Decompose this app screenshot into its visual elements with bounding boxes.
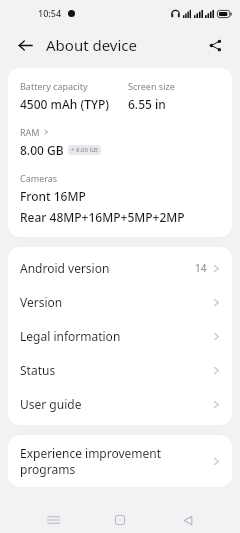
staticText: Experience improvement programs [20, 445, 162, 477]
staticText: Screen size [128, 80, 175, 92]
staticText: 10:54 [38, 7, 62, 19]
button[interactable]: User guide [8, 387, 232, 421]
button[interactable]: Back [12, 32, 38, 58]
button[interactable]: Recent apps [38, 507, 68, 533]
button[interactable]: Legal information [8, 319, 232, 353]
staticText: + 8.00 GB [71, 146, 98, 154]
button[interactable]: Home [105, 507, 135, 533]
staticText: About device [46, 35, 138, 55]
staticText: Version [20, 294, 63, 310]
button[interactable]: RAM [20, 126, 49, 138]
button[interactable]: Status [8, 353, 232, 387]
staticText: Battery capacity [20, 80, 88, 92]
staticText: Cameras [20, 172, 58, 184]
button[interactable]: Experience improvement programs [8, 435, 232, 487]
staticText: RAM [20, 126, 40, 138]
button[interactable]: Share [202, 32, 228, 58]
button[interactable]: Version [8, 285, 232, 319]
staticText: 14 [195, 261, 207, 275]
staticText: 4500 mAh (TYP) [20, 96, 110, 112]
staticText: Front 16MP [20, 188, 86, 204]
staticText: Android version [20, 260, 110, 276]
staticText: 6.55 in [128, 96, 166, 112]
staticText: Legal information [20, 328, 121, 344]
staticText: User guide [20, 396, 82, 412]
staticText: Rear 48MP+16MP+5MP+2MP [20, 209, 185, 225]
button[interactable]: Android version [8, 251, 232, 285]
button[interactable]: Back [173, 507, 203, 533]
staticText: Status [20, 362, 56, 378]
staticText: 8.00 GB [20, 142, 64, 158]
